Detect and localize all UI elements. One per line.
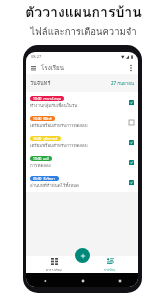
staticText: โรงเรียน [41, 63, 64, 73]
staticText: 27 กันยายน [111, 80, 134, 87]
button[interactable]: 10:00 ภาษาอังกฤษ [26, 92, 138, 112]
staticText: อ่านบทที่กำหนดไว้ทั้งหมด [30, 182, 79, 189]
staticText: 06:00 ชีววิทยา [33, 176, 56, 181]
button[interactable]: 19:00 เคมี [26, 152, 138, 172]
button[interactable]: Mark incomplete [128, 139, 134, 145]
button[interactable]: ตารางเรียน [26, 256, 82, 273]
staticText: เตรียมพร้อมสำหรับการทดสอบ [30, 122, 88, 129]
button[interactable]: Mark complete [128, 119, 134, 125]
staticText: 19:00 เคมี [33, 156, 49, 161]
button[interactable]: Mark incomplete [128, 179, 134, 185]
staticText: เตรียมพร้อมสำหรับการทดสอบ [30, 142, 88, 149]
button[interactable]: Mark incomplete [128, 99, 134, 105]
staticText: 08:27 [31, 54, 42, 59]
button[interactable]: 13:00 ฟิสิกส์ [26, 112, 138, 132]
button[interactable]: Mark incomplete [128, 159, 134, 165]
button[interactable]: 16:00 ภูมิศาสตร์ [26, 132, 138, 152]
staticText: 16:00 ภูมิศาสตร์ [33, 136, 58, 141]
staticText: ไฟล์และการเตือนความจำ [30, 24, 137, 39]
staticText: ตัววางแผนการบ้าน [25, 1, 142, 23]
staticText: ทำงานกลุ่มกับเพื่อนในวัน [30, 102, 78, 109]
staticText: 13:00 ฟิสิกส์ [33, 116, 52, 121]
button[interactable]: Add task [75, 248, 90, 263]
button[interactable]: Recent apps [115, 276, 124, 285]
staticText: การบ้าน [104, 267, 116, 272]
button[interactable]: Home [78, 276, 87, 285]
button[interactable]: การบ้าน [82, 256, 138, 273]
staticText: ตารางเรียน [46, 267, 62, 272]
staticText: วันจันทร์ [30, 79, 51, 88]
staticText: 10:00 ภาษาอังกฤษ [33, 96, 61, 101]
button[interactable]: Open navigation menu [29, 63, 38, 72]
staticText: การทดลอง [30, 162, 51, 169]
button[interactable]: 06:00 ชีววิทยา [26, 172, 138, 192]
button[interactable]: Back [40, 276, 49, 285]
button[interactable]: More options [126, 63, 135, 72]
